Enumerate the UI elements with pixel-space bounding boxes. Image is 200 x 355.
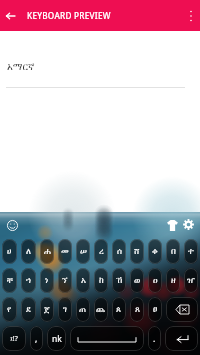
- staticText: ጸ: [135, 305, 140, 314]
- button[interactable]: ገ: [58, 297, 72, 322]
- staticText: ኘ: [62, 276, 68, 285]
- staticText: አማርኛ: [7, 62, 35, 72]
- button[interactable]: ሐ: [40, 239, 54, 264]
- button[interactable]: Space: [70, 326, 144, 351]
- staticText: ፀ: [153, 305, 158, 314]
- staticText: ወ: [134, 276, 141, 285]
- button[interactable]: ሠ: [76, 239, 90, 264]
- button[interactable]: ኸ: [112, 268, 126, 293]
- staticText: nk: [52, 333, 62, 345]
- staticText: ረ: [99, 247, 104, 256]
- staticText: ነ: [45, 276, 49, 285]
- staticText: የ: [7, 305, 12, 314]
- staticText: ደ: [26, 305, 31, 314]
- staticText: KEYBOARD PREVIEW: [27, 10, 111, 21]
- staticText: ፤!?: [10, 334, 18, 344]
- button[interactable]: ፤!?: [2, 326, 26, 351]
- staticText: ዘ: [171, 276, 176, 285]
- staticText: ጀ: [44, 305, 50, 314]
- staticText: አ: [81, 276, 86, 285]
- staticText: ቀ: [152, 247, 158, 256]
- button[interactable]: Back: [0, 5, 21, 26]
- button[interactable]: Emoji: [4, 217, 20, 233]
- staticText: ጨ: [96, 305, 106, 314]
- button[interactable]: ጸ: [130, 297, 144, 322]
- staticText: ,: [35, 333, 38, 345]
- button[interactable]: በ: [166, 239, 180, 264]
- button[interactable]: ,: [30, 326, 43, 351]
- staticText: በ: [171, 247, 176, 256]
- staticText: ሐ: [44, 247, 51, 256]
- staticText: ጰ: [116, 305, 122, 314]
- button[interactable]: ኘ: [58, 268, 72, 293]
- button[interactable]: ፀ: [148, 297, 162, 322]
- button[interactable]: Backspace: [166, 297, 198, 322]
- staticText: ሠ: [80, 247, 87, 256]
- button[interactable]: .: [148, 326, 161, 351]
- staticText: ሸ: [134, 247, 140, 256]
- staticText: ኀ: [26, 276, 31, 285]
- button[interactable]: nk: [47, 326, 66, 351]
- staticText: ቸ: [7, 276, 13, 285]
- button[interactable]: የ: [2, 297, 17, 322]
- staticText: .: [153, 333, 156, 345]
- button[interactable]: More options: [182, 7, 200, 25]
- button[interactable]: ጠ: [76, 297, 90, 322]
- button[interactable]: ዘ: [166, 268, 180, 293]
- staticText: ተ: [188, 247, 194, 256]
- button[interactable]: ረ: [94, 239, 108, 264]
- staticText: ሰ: [117, 247, 122, 256]
- button[interactable]: Theme: [164, 217, 180, 233]
- button[interactable]: ሀ: [2, 239, 17, 264]
- staticText: ገ: [63, 305, 67, 314]
- button[interactable]: መ: [58, 239, 72, 264]
- staticText: ዐ: [153, 276, 158, 285]
- button[interactable]: ወ: [130, 268, 144, 293]
- staticText: ለ: [26, 247, 31, 256]
- button[interactable]: ዠ: [184, 268, 198, 293]
- button[interactable]: ለ: [21, 239, 36, 264]
- button[interactable]: ሸ: [130, 239, 144, 264]
- button[interactable]: ከ: [94, 268, 108, 293]
- button[interactable]: Settings: [180, 216, 196, 232]
- button[interactable]: አ: [76, 268, 90, 293]
- button[interactable]: ሰ: [112, 239, 126, 264]
- button[interactable]: ዐ: [148, 268, 162, 293]
- button[interactable]: ነ: [40, 268, 54, 293]
- staticText: ሀ: [7, 247, 12, 256]
- staticText: ዠ: [187, 276, 195, 285]
- button[interactable]: ደ: [21, 297, 36, 322]
- staticText: ከ: [99, 276, 104, 285]
- button[interactable]: Enter: [165, 326, 198, 351]
- staticText: ኸ: [116, 276, 123, 285]
- button[interactable]: ጀ: [40, 297, 54, 322]
- button[interactable]: ኀ: [21, 268, 36, 293]
- button[interactable]: ጨ: [94, 297, 108, 322]
- staticText: መ: [61, 247, 69, 256]
- button[interactable]: ቸ: [2, 268, 17, 293]
- button[interactable]: ቀ: [148, 239, 162, 264]
- button[interactable]: ጰ: [112, 297, 126, 322]
- button[interactable]: ተ: [184, 239, 198, 264]
- staticText: ጠ: [79, 305, 87, 314]
